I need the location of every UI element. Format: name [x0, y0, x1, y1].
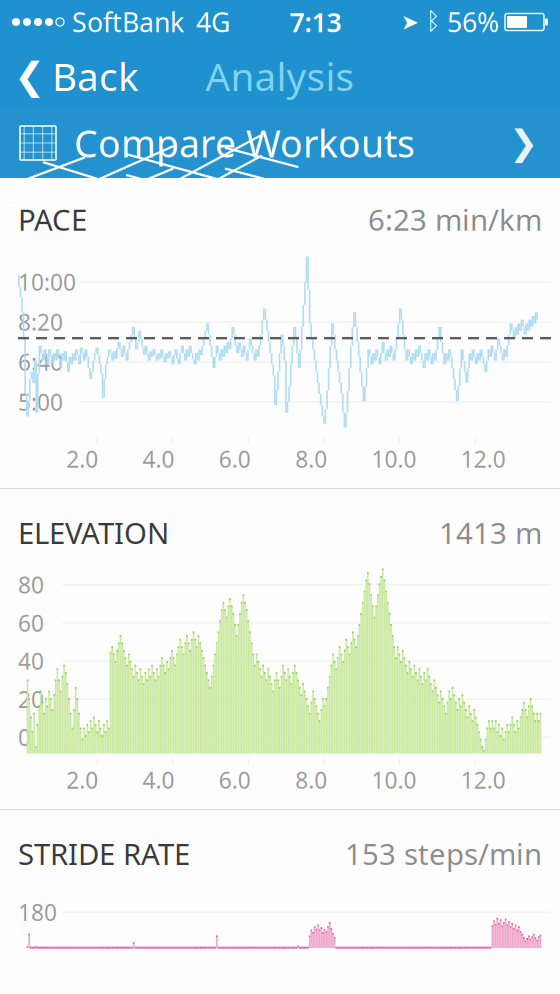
staticText: 10.0	[371, 765, 416, 795]
staticText: 4.0	[143, 444, 175, 474]
staticText: 4.0	[143, 765, 175, 795]
staticText: 5:00	[18, 387, 63, 417]
staticText: Compare Workouts	[74, 118, 415, 168]
staticText: ➤	[401, 10, 419, 34]
staticText: 2.0	[66, 765, 98, 795]
staticText: 7:13	[289, 4, 341, 40]
button[interactable]: ❮	[0, 44, 153, 108]
staticText: 6:23 min/km	[368, 200, 542, 239]
staticText: 12.0	[461, 765, 506, 795]
staticText: 6.0	[219, 765, 251, 795]
staticText: 1413 m	[439, 513, 542, 552]
staticText: ELEVATION	[18, 513, 169, 552]
staticText: 180	[18, 897, 57, 927]
staticText: 153 steps/min	[345, 834, 542, 873]
staticText: 10:00	[18, 267, 76, 297]
staticText: 80	[18, 570, 44, 600]
staticText: ❯	[509, 123, 538, 163]
staticText: 56%	[447, 4, 499, 40]
button[interactable]: Compare Workouts	[0, 108, 560, 178]
staticText: STRIDE RATE	[18, 834, 190, 873]
staticText: ❮	[14, 55, 45, 97]
staticText: 12.0	[461, 444, 506, 474]
staticText: 10.0	[371, 444, 416, 474]
staticText: 0	[18, 722, 31, 752]
staticText: ᛒ	[426, 10, 440, 34]
staticText: 20	[18, 684, 44, 714]
staticText: 8.0	[295, 444, 327, 474]
staticText: Analysis	[205, 50, 354, 102]
staticText: SoftBank	[72, 4, 184, 40]
staticText: 6.0	[219, 444, 251, 474]
staticText: 4G	[196, 4, 230, 40]
staticText: 6:40	[18, 347, 63, 377]
staticText: PACE	[18, 200, 87, 239]
staticText: 40	[18, 646, 44, 676]
staticText: 8.0	[295, 765, 327, 795]
staticText: 8:20	[18, 307, 63, 337]
staticText: Back	[52, 50, 139, 102]
staticText: 2.0	[66, 444, 98, 474]
staticText: 60	[18, 608, 44, 638]
